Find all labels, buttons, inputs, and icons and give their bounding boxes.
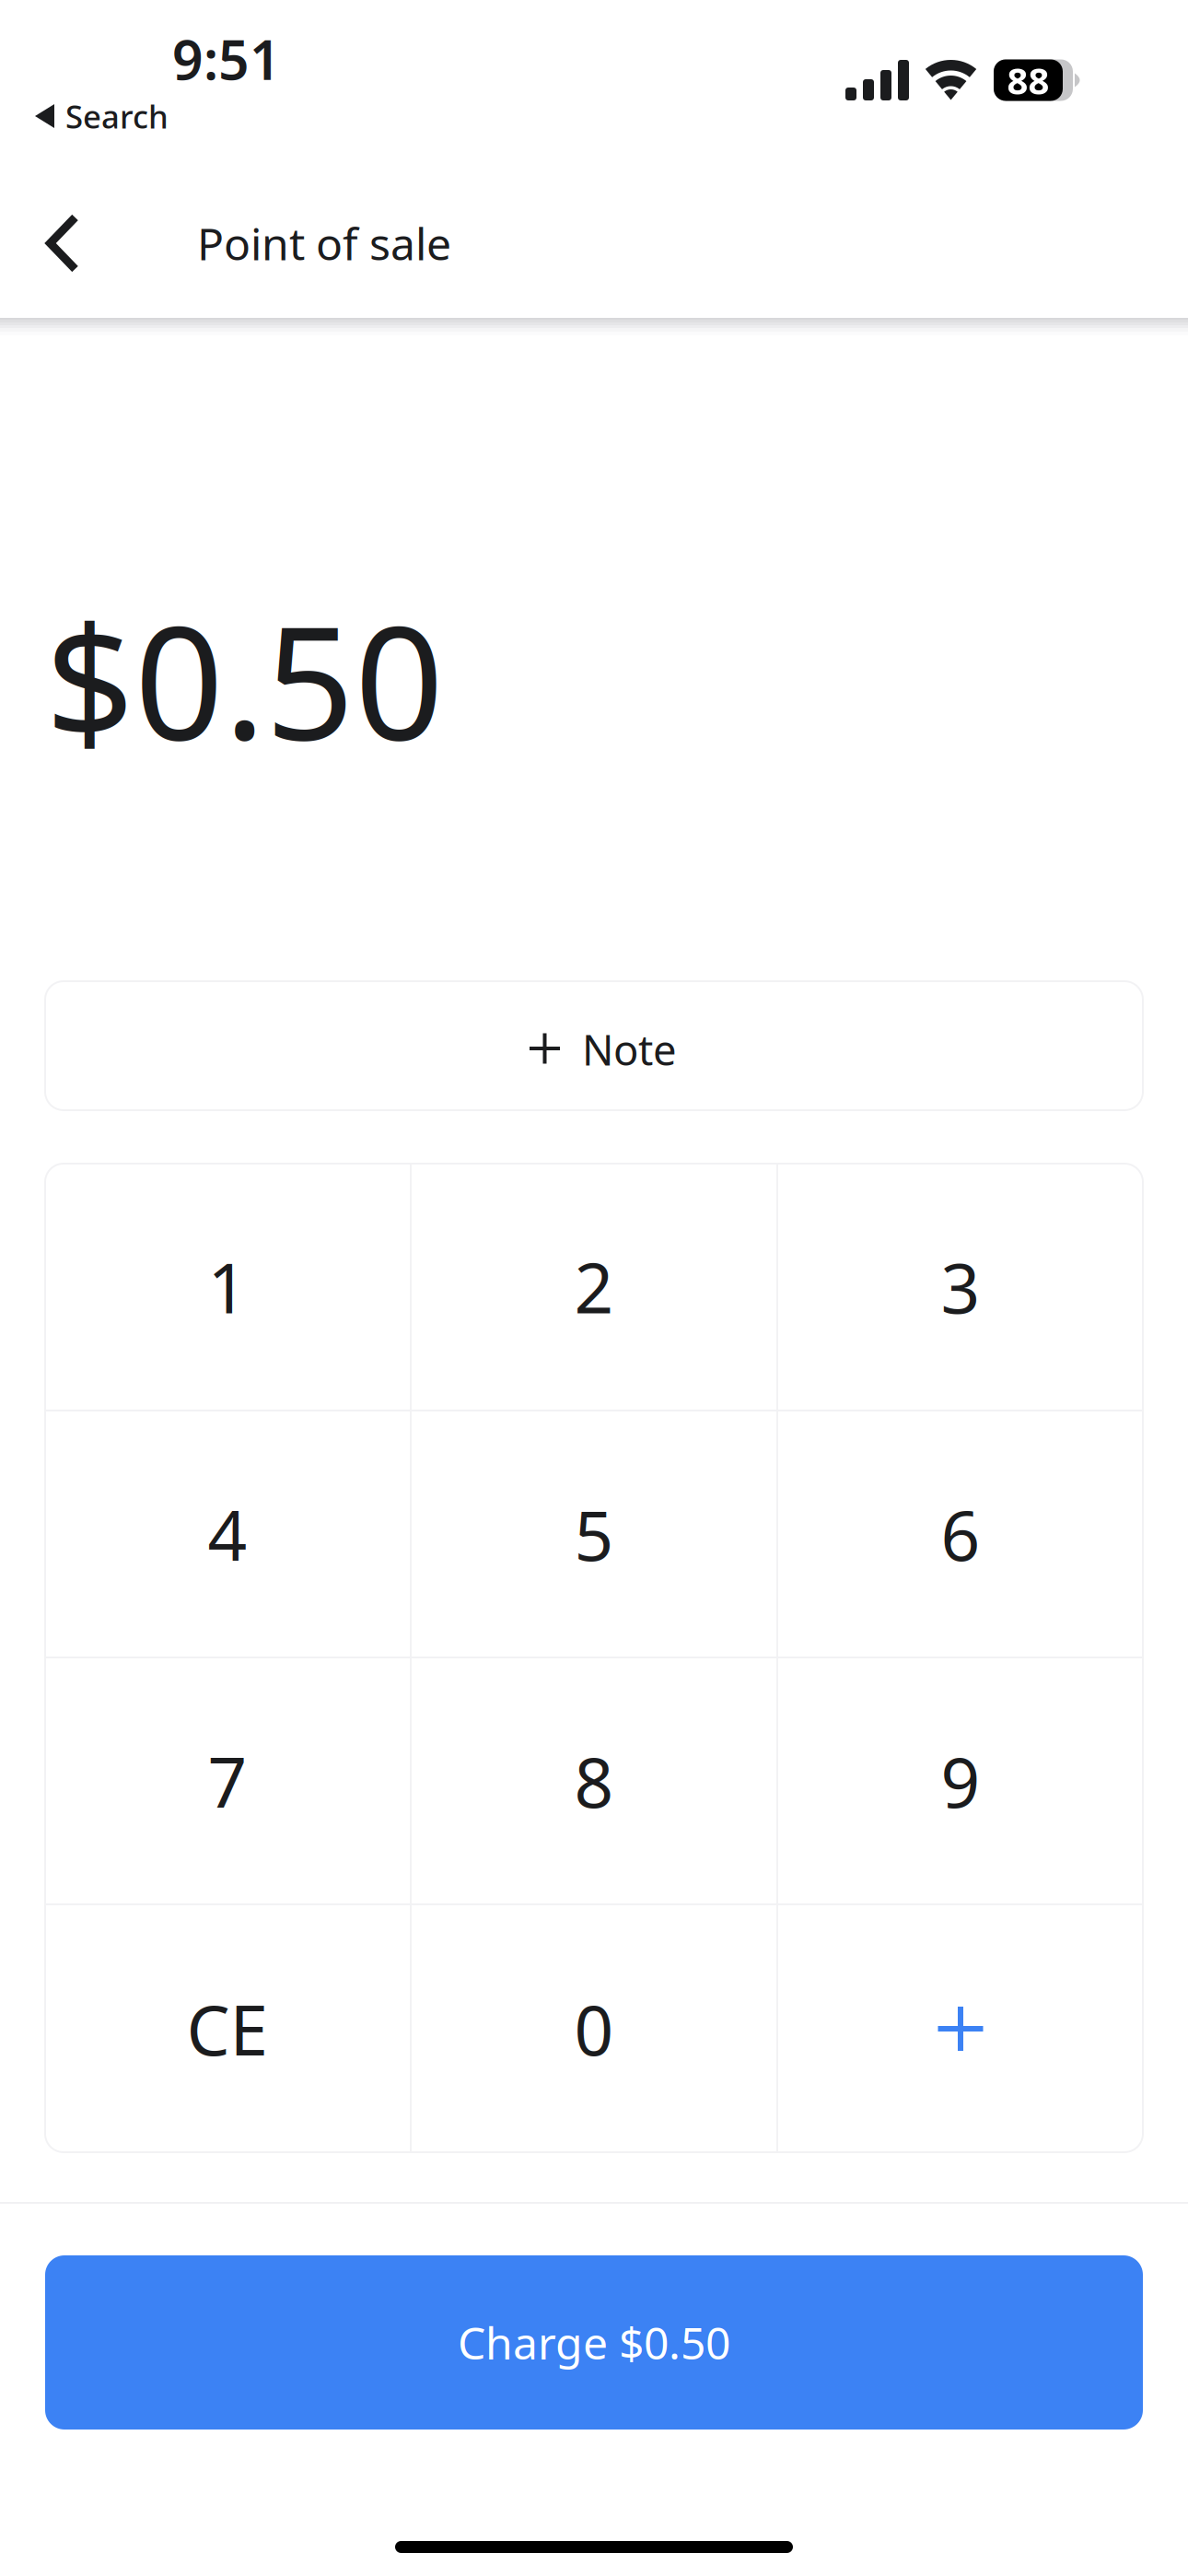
button[interactable]: Charge $0.50	[45, 2255, 1143, 2430]
staticText: Point of sale	[197, 214, 451, 273]
button[interactable]	[778, 1905, 1143, 2152]
staticText: 5	[574, 1488, 614, 1580]
staticText: 2	[574, 1241, 614, 1332]
button[interactable]: 9	[778, 1658, 1143, 1903]
staticText: $0.50	[45, 575, 444, 783]
button[interactable]: 1	[45, 1164, 410, 1410]
staticText: Note	[582, 1022, 677, 1077]
staticText: 3	[941, 1241, 980, 1332]
staticText: 8	[574, 1735, 614, 1827]
button[interactable]: CE	[45, 1905, 410, 2152]
button[interactable]: 8	[412, 1658, 776, 1903]
staticText: 6	[941, 1488, 980, 1580]
button[interactable]: 7	[45, 1658, 410, 1903]
button[interactable]: Back	[3, 189, 122, 298]
staticText: 88	[1007, 56, 1049, 105]
staticText: CE	[186, 1983, 268, 2074]
button[interactable]: Note	[45, 981, 1143, 1110]
staticText: 0	[574, 1983, 614, 2074]
button[interactable]: 5	[412, 1411, 776, 1657]
button[interactable]: 3	[778, 1164, 1143, 1410]
staticText: 1	[208, 1241, 247, 1332]
button[interactable]: 0	[412, 1905, 776, 2152]
button[interactable]: 4	[45, 1411, 410, 1657]
staticText: 9:51	[172, 23, 281, 95]
staticText: Search	[65, 95, 169, 137]
button[interactable]: 2	[412, 1164, 776, 1410]
staticText: 4	[208, 1488, 247, 1580]
staticText: 7	[208, 1735, 247, 1827]
staticText: 9	[941, 1735, 980, 1827]
button[interactable]: Search	[0, 98, 1188, 135]
staticText: Charge $0.50	[458, 2313, 730, 2372]
button[interactable]: 6	[778, 1411, 1143, 1657]
